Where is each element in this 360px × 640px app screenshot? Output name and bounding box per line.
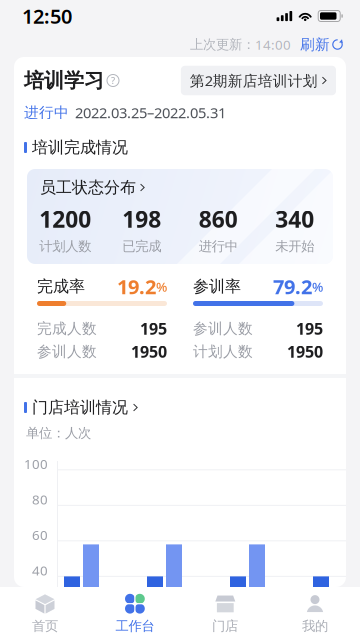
staticText: 培训学习 [24, 68, 104, 93]
button[interactable]: 工作台 [90, 587, 180, 640]
staticText: 195 [140, 318, 167, 339]
staticText: 79.2 [273, 273, 312, 300]
staticText: 工作台 [115, 618, 154, 634]
staticText: 门店 [212, 618, 238, 634]
staticText: 1950 [131, 341, 167, 362]
staticText: % [156, 278, 167, 295]
staticText: 1200 [39, 204, 91, 234]
staticText: 14:00 [255, 36, 291, 53]
staticText: 19.2 [117, 273, 156, 300]
staticText: 员工状态分布 [40, 178, 136, 197]
staticText: 2022.03.25–2022.05.31 [75, 103, 226, 122]
button[interactable]: 门店 [180, 587, 270, 640]
staticText: 计划人数 [193, 342, 253, 360]
staticText: 未开始 [275, 238, 314, 254]
staticText: 1950 [287, 341, 323, 362]
staticText: 门店培训情况 [32, 398, 128, 417]
button[interactable]: 首页 [0, 587, 90, 640]
staticText: ? [111, 74, 115, 87]
staticText: 195 [296, 318, 323, 339]
staticText: 进行中 [24, 103, 69, 121]
staticText: 100 [24, 455, 48, 473]
staticText: 首页 [32, 618, 58, 634]
staticText: 我的 [302, 618, 328, 634]
staticText: 40 [32, 561, 48, 579]
staticText: 参训人数 [193, 319, 253, 337]
staticText: 12:50 [22, 3, 72, 29]
staticText: 60 [32, 526, 48, 544]
staticText: 860 [199, 204, 238, 234]
staticText: 已完成 [122, 238, 161, 254]
button[interactable]: 员工状态分布 [27, 169, 333, 194]
staticText: 参训人数 [37, 342, 97, 360]
button[interactable]: 第2期新店培训计划 [181, 66, 336, 95]
staticText: 培训完成情况 [32, 138, 128, 157]
staticText: 单位：人次 [26, 425, 91, 441]
button[interactable]: 我的 [270, 587, 360, 640]
staticText: 198 [122, 204, 161, 234]
staticText: 80 [32, 490, 48, 508]
staticText: 完成率 [37, 277, 85, 296]
staticText: 上次更新： [190, 36, 255, 53]
staticText: 进行中 [199, 238, 238, 254]
staticText: 刷新 [300, 35, 330, 53]
staticText: 第2期新店培训计划 [190, 71, 318, 90]
button[interactable]: 刷新 [300, 35, 343, 53]
staticText: % [312, 278, 323, 295]
staticText: 计划人数 [39, 238, 91, 254]
staticText: 完成人数 [37, 319, 97, 337]
staticText: 参训率 [193, 277, 241, 296]
staticText: 340 [275, 204, 314, 234]
